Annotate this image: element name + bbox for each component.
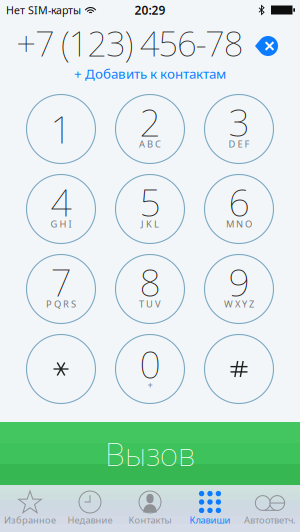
button[interactable]: 1 [16,89,105,169]
staticText: Недавние [67,514,112,526]
button[interactable]: Избранное [0,485,60,532]
button[interactable]: Автоответч. [240,485,300,532]
staticText: 0 [139,339,160,389]
staticText: 3 [228,97,249,147]
staticText: 5 [139,177,160,227]
button[interactable]: Delete [255,33,278,53]
staticText: Клавиши [189,514,230,526]
staticText: J K L [141,218,159,230]
staticText: 2 [139,97,160,147]
staticText: 4 [50,177,71,227]
button[interactable]: Клавиши [180,485,240,532]
staticText: 7 [50,257,71,307]
staticText: 8 [139,257,160,307]
button[interactable]: Контакты [120,485,180,532]
button[interactable]: Вызов [0,422,300,485]
staticText: P Q R S [46,298,76,310]
staticText: Избранное [4,514,56,526]
staticText: Вызов [105,432,195,475]
staticText: W X Y Z [224,298,254,310]
button[interactable]: 7 [16,249,105,329]
staticText: T U V [139,298,161,310]
staticText: A B C [139,138,161,150]
staticText: 20:29 [134,2,165,18]
staticText: D E F [228,138,249,150]
button[interactable]: 0 [105,329,194,409]
button[interactable]: 8 [105,249,194,329]
staticText: 1 [50,104,71,154]
button[interactable]: 9 [194,249,283,329]
staticText: Контакты [128,514,171,526]
button[interactable]: + Добавить к контактам [0,66,300,89]
button[interactable]: 2 [105,89,194,169]
staticText: 6 [228,177,249,227]
staticText: G H I [50,218,71,230]
button[interactable]: Недавние [60,485,120,532]
staticText: Нет SIM-карты [6,3,81,17]
button[interactable] [194,329,283,409]
staticText: M N O [226,218,252,230]
button[interactable]: 5 [105,169,194,249]
staticText: + [147,379,152,391]
button[interactable]: 3 [194,89,283,169]
staticText: Автоответч. [244,514,296,526]
staticText: + Добавить к контактам [74,65,226,82]
staticText: 9 [228,257,249,307]
button[interactable]: 4 [16,169,105,249]
staticText: +7 (123) 456-78 [16,20,244,66]
button[interactable]: 6 [194,169,283,249]
button[interactable] [16,329,105,409]
